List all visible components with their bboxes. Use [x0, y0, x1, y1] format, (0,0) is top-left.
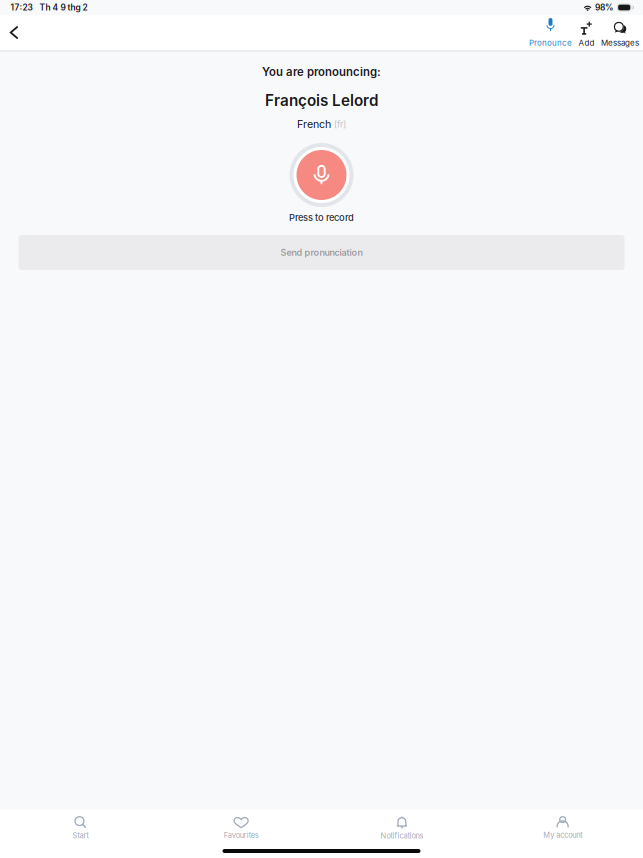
staticText: Add [578, 38, 594, 48]
staticText: 98% [595, 2, 613, 13]
button[interactable]: Notifications [321, 809, 482, 840]
staticText: Notifications [380, 831, 423, 840]
staticText: [fr] [334, 119, 346, 129]
button[interactable]: My account [482, 809, 643, 840]
staticText: French [297, 117, 331, 130]
staticText: Favourites [224, 831, 259, 840]
staticText: Messages [601, 38, 639, 48]
button[interactable]: Favourites [161, 809, 322, 840]
staticText: 17:23 [10, 2, 32, 13]
staticText: Th 4 9 thg 2 [39, 2, 87, 13]
staticText: Send pronunciation [280, 247, 362, 258]
button[interactable]: Press to record [289, 143, 353, 207]
button[interactable]: Pronounce [529, 15, 572, 50]
staticText: My account [543, 830, 582, 839]
staticText: Press to record [289, 212, 354, 223]
button[interactable]: Start [0, 809, 161, 840]
button[interactable]: Messages [601, 15, 639, 50]
button[interactable]: Back [6, 15, 23, 50]
staticText: You are pronouncing: [262, 65, 381, 79]
button[interactable]: Add [578, 15, 595, 50]
button[interactable]: Send pronunciation [18, 235, 624, 270]
staticText: François Lelord [265, 91, 378, 110]
staticText: Pronounce [529, 38, 572, 48]
staticText: Start [72, 831, 88, 840]
